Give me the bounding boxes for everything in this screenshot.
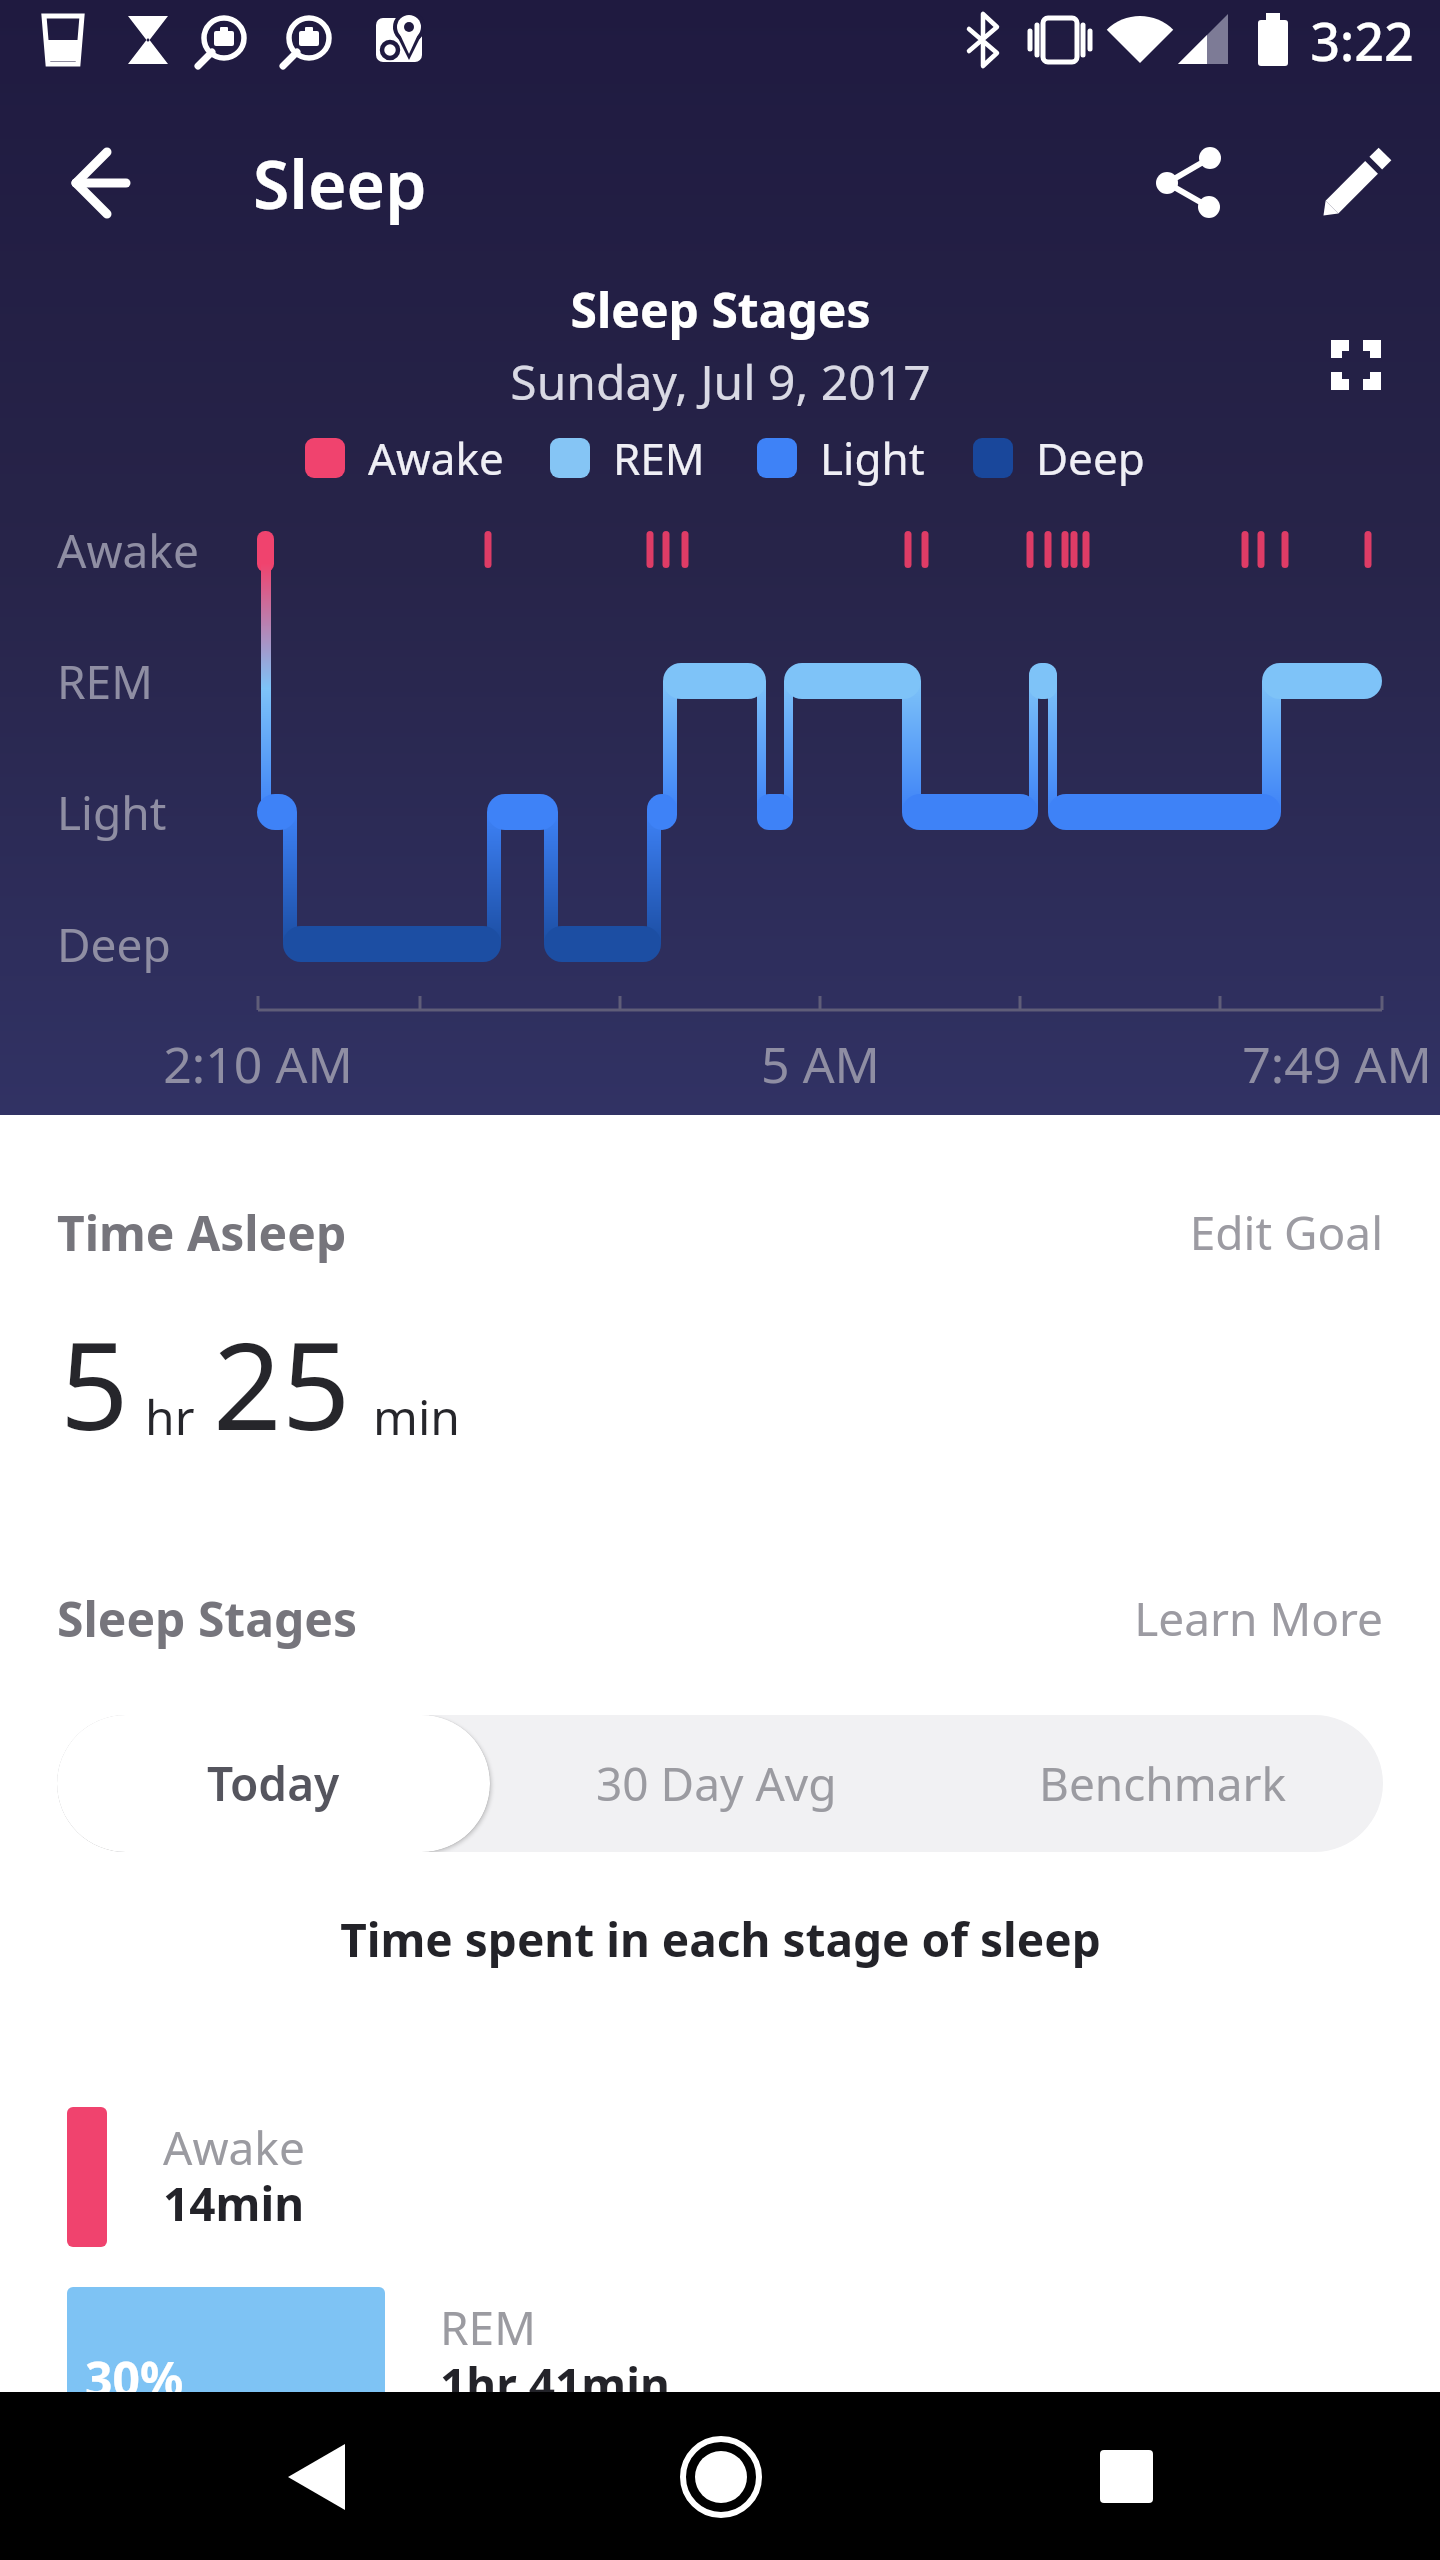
staticText: 7:49 AM [1242, 1030, 1432, 1098]
staticText: 14min [163, 2172, 305, 2235]
staticText: Light [820, 428, 925, 488]
staticText: Learn More [1134, 1587, 1383, 1650]
staticText: 5 [60, 1302, 129, 1465]
staticText: Benchmark [1039, 1752, 1287, 1815]
button[interactable]: 30 Day Avg [490, 1715, 943, 1852]
button[interactable]: Edit Goal [983, 1193, 1383, 1271]
staticText: Awake [57, 519, 199, 582]
staticText: 1hr 41min [440, 2353, 670, 2416]
staticText: min [373, 1384, 460, 1449]
staticText: Sunday, Jul 9, 2017 [510, 349, 931, 414]
staticText: Awake [163, 2116, 305, 2179]
button[interactable] [1031, 2412, 1221, 2542]
staticText: REM [613, 428, 705, 488]
button[interactable]: Today [57, 1715, 490, 1852]
staticText: REM [57, 650, 153, 713]
staticText: Sleep Stages [57, 1586, 358, 1651]
button[interactable] [626, 2412, 816, 2542]
button[interactable]: Learn More [983, 1579, 1383, 1657]
button[interactable] [1318, 147, 1392, 221]
staticText: Time spent in each stage of sleep [340, 1908, 1101, 1971]
button[interactable] [60, 145, 136, 221]
button[interactable] [1152, 145, 1228, 221]
staticText: Sleep [253, 138, 427, 228]
button[interactable] [250, 2412, 440, 2542]
staticText: 2:10 AM [163, 1030, 353, 1098]
staticText: Light [57, 781, 167, 844]
button[interactable] [1323, 332, 1389, 398]
staticText: 30% [85, 2346, 184, 2411]
staticText: Edit Goal [1189, 1201, 1383, 1264]
staticText: Deep [1036, 428, 1145, 488]
staticText: 3:22 [1310, 5, 1414, 76]
staticText: Deep [57, 913, 171, 976]
staticText: Today [207, 1752, 340, 1815]
staticText: 25 [213, 1302, 351, 1465]
staticText: REM [440, 2296, 536, 2359]
staticText: Awake [368, 428, 504, 488]
staticText: 5 AM [761, 1030, 880, 1098]
staticText: 30 Day Avg [596, 1752, 837, 1815]
button[interactable]: Benchmark [943, 1715, 1383, 1852]
staticText: Time Asleep [57, 1200, 347, 1265]
staticText: hr [145, 1384, 195, 1449]
staticText: Sleep Stages [570, 277, 871, 342]
